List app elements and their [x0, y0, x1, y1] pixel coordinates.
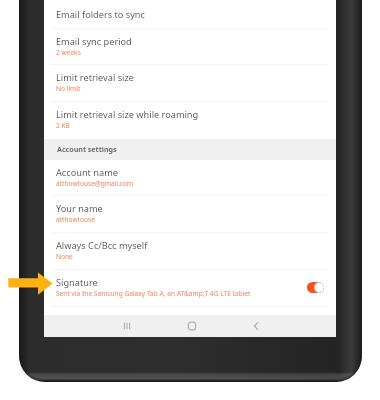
staticText: Limit retrieval size — [56, 71, 134, 84]
staticText: Sent via the Samsung Galaxy Tab A, an AT… — [56, 289, 251, 298]
staticText: 2 KB — [56, 121, 70, 130]
staticText: Signature — [56, 276, 98, 289]
button[interactable]: Email sync period — [44, 29, 336, 65]
button[interactable]: Signature toggle — [307, 282, 324, 293]
staticText: 2 weeks — [56, 48, 81, 57]
staticText: Account name — [56, 166, 118, 179]
staticText: atthowtouse — [56, 215, 95, 224]
button[interactable]: Account name — [44, 160, 336, 196]
button[interactable]: Email folders to sync — [44, 0, 336, 29]
button[interactable]: Recents — [119, 315, 135, 337]
staticText: atthowtouse@gmail.com — [56, 179, 134, 188]
button[interactable]: Always Cc/Bcc myself — [44, 233, 336, 270]
staticText: Always Cc/Bcc myself — [56, 239, 148, 252]
button[interactable]: Limit retrieval size while roaming — [44, 102, 336, 139]
button[interactable]: Signature — [44, 270, 336, 307]
staticText: Account settings — [57, 144, 117, 154]
button[interactable]: Home — [184, 315, 200, 337]
button[interactable]: Your name — [44, 196, 336, 233]
staticText: Email sync period — [56, 35, 132, 48]
button[interactable]: Back — [248, 315, 264, 337]
staticText: Email folders to sync — [56, 8, 145, 21]
staticText: Limit retrieval size while roaming — [56, 108, 199, 121]
button[interactable]: Limit retrieval size — [44, 65, 336, 102]
staticText: No limit — [56, 84, 81, 93]
staticText: Your name — [56, 202, 103, 215]
staticText: None — [56, 252, 73, 261]
